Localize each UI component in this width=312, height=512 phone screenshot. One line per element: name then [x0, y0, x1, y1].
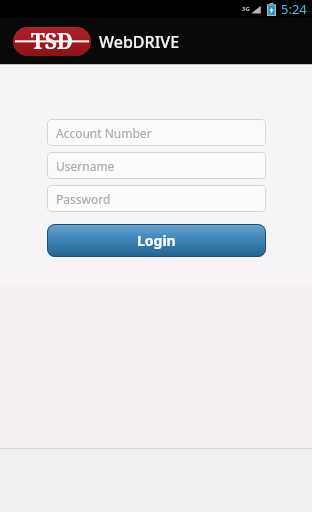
- staticText: Username: [56, 158, 115, 174]
- button[interactable]: Login: [47, 224, 266, 257]
- button[interactable]: Username: [47, 152, 266, 179]
- other: Battery charging: [267, 3, 276, 16]
- staticText: 3G: [242, 5, 250, 13]
- button[interactable]: Account Number: [47, 119, 266, 146]
- staticText: Account Number: [56, 125, 152, 141]
- other: Signal strength: [251, 4, 261, 15]
- button[interactable]: Password: [47, 185, 266, 212]
- staticText: 5:24: [281, 0, 307, 18]
- staticText: Password: [56, 191, 111, 207]
- staticText: Login: [137, 231, 176, 250]
- staticText: WebDRIVE: [99, 31, 180, 53]
- staticText: TSD: [31, 27, 73, 56]
